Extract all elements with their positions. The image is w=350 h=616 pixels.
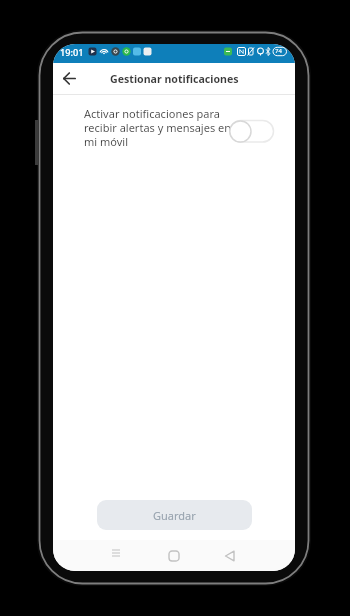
button[interactable] [59,68,80,89]
staticText: Activar notificaciones para recibir aler… [84,106,232,149]
staticText: 19:01 [60,46,84,59]
button[interactable] [158,544,190,568]
staticText: Gestionar notificaciones [110,72,239,86]
button[interactable] [214,544,246,568]
button[interactable] [223,114,281,150]
button[interactable]: Guardar [97,500,252,530]
button[interactable] [100,544,132,568]
staticText: Guardar [153,508,196,523]
button[interactable]: Activar notificaciones para recibir aler… [84,106,244,154]
staticText: 74 [275,47,282,55]
